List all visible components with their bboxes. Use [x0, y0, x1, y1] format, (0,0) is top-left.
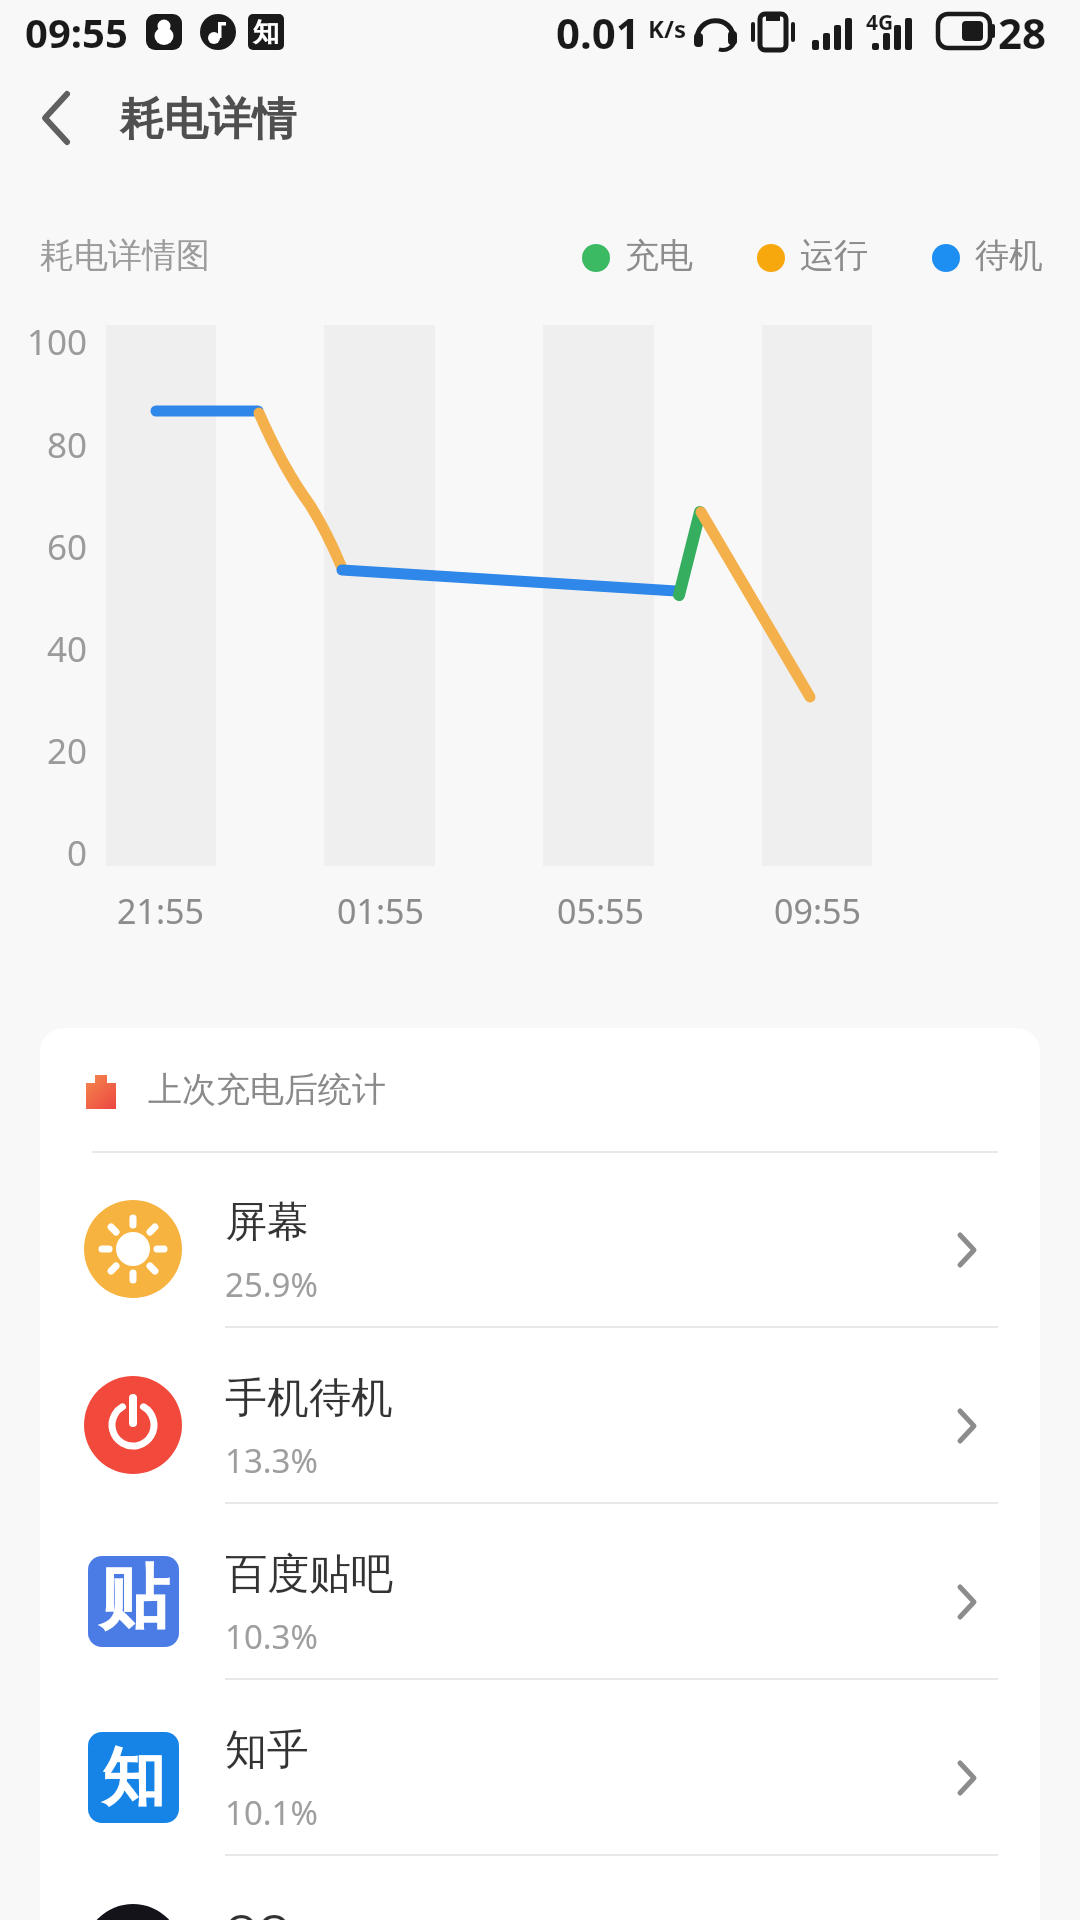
staticText: 百度贴吧: [225, 1548, 393, 1601]
staticText: 01:55: [337, 888, 424, 934]
staticText: 09:55: [25, 5, 128, 59]
staticText: 知乎: [225, 1724, 309, 1777]
staticText: 21:55: [117, 888, 204, 934]
staticText: 100: [27, 318, 88, 364]
button[interactable]: QQ: [40, 1856, 1040, 1920]
staticText: 10.1%: [225, 1790, 318, 1835]
staticText: 10.3%: [225, 1614, 318, 1659]
staticText: 05:55: [557, 888, 644, 934]
staticText: 80: [47, 421, 88, 467]
staticText: 60: [47, 523, 88, 569]
staticText: 待机: [975, 234, 1043, 277]
staticText: 09:55: [774, 888, 861, 934]
button[interactable]: 手机待机: [40, 1328, 1040, 1504]
staticText: 耗电详情图: [40, 234, 210, 277]
staticText: 屏幕: [225, 1196, 309, 1249]
staticText: 40: [47, 625, 88, 671]
staticText: 20: [47, 727, 88, 773]
staticText: 25.9%: [225, 1262, 318, 1307]
button[interactable]: [28, 90, 84, 146]
button[interactable]: 知: [40, 1680, 1040, 1856]
staticText: 贴: [99, 1554, 169, 1642]
button[interactable]: 屏幕: [40, 1152, 1040, 1328]
button[interactable]: 贴: [40, 1504, 1040, 1680]
staticText: 知: [102, 1738, 165, 1817]
staticText: 运行: [800, 234, 868, 277]
staticText: QQ: [225, 1900, 291, 1920]
staticText: 知: [253, 16, 279, 49]
staticText: K/s: [648, 12, 686, 45]
staticText: 13.3%: [225, 1438, 318, 1483]
staticText: 4G: [866, 8, 894, 37]
staticText: 充电: [625, 234, 693, 277]
staticText: 0: [67, 829, 88, 875]
staticText: 耗电详情: [120, 92, 296, 147]
staticText: 0.01: [556, 4, 640, 61]
staticText: 上次充电后统计: [148, 1068, 386, 1111]
staticText: 手机待机: [225, 1372, 393, 1425]
staticText: 28: [998, 4, 1047, 61]
